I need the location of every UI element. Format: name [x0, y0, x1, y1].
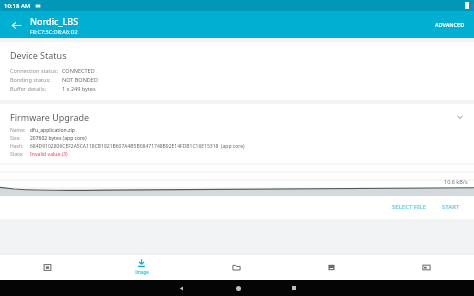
button[interactable]: START: [436, 200, 466, 214]
staticText: Buffer details:: [10, 85, 62, 92]
staticText: ADVANCED: [435, 21, 465, 28]
staticText: Connection status:: [10, 67, 62, 74]
staticText: CONNECTED: [62, 67, 95, 74]
button[interactable]: Home: [231, 281, 245, 295]
staticText: Hash:: [10, 143, 30, 150]
staticText: State:: [10, 151, 30, 158]
staticText: Name:: [10, 127, 30, 134]
button[interactable]: ADVANCED: [430, 17, 470, 32]
staticText: NOT BONDED: [62, 76, 98, 83]
button[interactable]: Settings: [284, 254, 379, 280]
staticText: Nordic_LBS: [30, 15, 79, 27]
other: Collapse: [454, 111, 466, 123]
button[interactable]: Log: [379, 254, 474, 280]
staticText: dfu_application.zip: [30, 127, 75, 134]
staticText: Invalid value (3): [30, 151, 68, 158]
button[interactable]: Files: [189, 254, 284, 280]
staticText: Device Status: [10, 49, 67, 61]
button[interactable]: Recents: [287, 281, 301, 295]
staticText: Size:: [10, 135, 30, 142]
staticText: F8:C7:5C:D8:A6:D2: [30, 28, 78, 35]
button[interactable]: Image: [94, 254, 189, 280]
staticText: Bonding status:: [10, 76, 62, 83]
staticText: START: [442, 203, 460, 211]
staticText: Image: [135, 269, 149, 275]
staticText: 207602 bytes (app core): [30, 135, 87, 142]
staticText: 684D9102806CEF2A5CA118CB1821B607A4B5B084…: [30, 143, 245, 150]
staticText: 1 x 249 bytes: [62, 85, 96, 92]
button[interactable]: Back: [174, 281, 188, 295]
button[interactable]: Scanner: [0, 254, 94, 280]
staticText: 10.6 kB/s: [444, 178, 468, 185]
button[interactable]: Firmware Upgrade: [0, 104, 474, 127]
staticText: SELECT FILE: [392, 203, 426, 211]
staticText: Firmware Upgrade: [10, 111, 90, 123]
button[interactable]: Back: [6, 15, 26, 35]
staticText: 10:18 AM: [4, 2, 31, 10]
button[interactable]: SELECT FILE: [386, 200, 432, 214]
